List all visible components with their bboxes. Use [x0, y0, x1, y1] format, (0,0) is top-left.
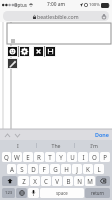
staticText: L	[97, 165, 101, 173]
button[interactable]: Dictate	[28, 188, 39, 198]
button[interactable]: X	[30, 176, 40, 186]
staticText: U	[70, 153, 75, 161]
button[interactable]: Share	[101, 13, 107, 19]
button[interactable]: G	[50, 164, 60, 174]
button[interactable]: Done	[95, 131, 109, 138]
button[interactable]: Change keyboard	[16, 188, 27, 198]
button[interactable]: K	[83, 164, 93, 174]
staticText: K	[86, 165, 90, 173]
button[interactable]: V	[52, 176, 62, 186]
button[interactable]: M	[85, 176, 95, 186]
staticText: Optus	[14, 2, 28, 8]
button[interactable]: F	[39, 164, 49, 174]
button[interactable]: Smiley	[8, 47, 17, 56]
staticText: E	[26, 153, 30, 161]
staticText: S	[20, 165, 24, 173]
staticText: 123	[5, 190, 13, 196]
staticText: Q	[4, 153, 9, 161]
button[interactable]: L	[94, 164, 104, 174]
staticText: W	[14, 153, 20, 161]
button[interactable]: Backspace	[96, 176, 110, 186]
staticText: P	[103, 153, 107, 161]
button[interactable]: Next field	[13, 131, 21, 139]
staticText: B	[66, 177, 71, 185]
staticText: beatlesbible.com	[37, 13, 79, 20]
button[interactable]	[7, 23, 111, 44]
staticText: N	[77, 177, 82, 185]
button[interactable]: Y	[56, 152, 66, 162]
button[interactable]: return	[85, 188, 110, 198]
button[interactable]: Gear	[20, 47, 29, 56]
staticText: Z	[22, 177, 26, 185]
staticText: G	[53, 165, 58, 173]
staticText: space	[56, 190, 68, 196]
staticText: The	[51, 142, 61, 149]
button[interactable]: R	[34, 152, 44, 162]
button[interactable]: C	[41, 176, 51, 186]
staticText: O	[92, 153, 97, 161]
staticText: V	[55, 177, 59, 185]
button[interactable]: O	[89, 152, 99, 162]
staticText: I	[82, 153, 85, 161]
button[interactable]: 123	[2, 188, 15, 198]
button[interactable]: Save	[46, 47, 55, 56]
staticText: 100%	[89, 2, 100, 8]
button[interactable]: E	[23, 152, 33, 162]
button[interactable]: B	[63, 176, 73, 186]
button[interactable]: T	[45, 152, 55, 162]
button[interactable]: Q	[2, 152, 11, 162]
button[interactable]: P	[100, 152, 110, 162]
staticText: C	[44, 177, 48, 185]
button[interactable]: The	[37, 140, 74, 150]
button[interactable]: I	[78, 152, 88, 162]
staticText: I	[17, 142, 19, 149]
button[interactable]: U	[67, 152, 77, 162]
button[interactable]: I'm	[75, 140, 112, 150]
staticText: A	[10, 165, 14, 173]
button[interactable]: S	[17, 164, 27, 174]
staticText: J	[76, 165, 78, 173]
staticText: D	[31, 165, 36, 173]
button[interactable]: N	[74, 176, 84, 186]
staticText: F	[42, 165, 46, 173]
button[interactable]: I	[0, 140, 36, 150]
button[interactable]: A	[7, 164, 16, 174]
button[interactable]: Close	[34, 47, 43, 56]
staticText: Y	[59, 153, 63, 161]
staticText: H	[64, 165, 69, 173]
staticText: 7:00 am	[47, 1, 66, 8]
staticText: return	[91, 190, 105, 196]
button[interactable]: Edit	[8, 59, 17, 68]
button[interactable]: H	[61, 164, 71, 174]
button[interactable]: D	[28, 164, 38, 174]
button[interactable]: Previous field	[3, 131, 11, 139]
button[interactable]: Shift	[2, 176, 17, 186]
staticText: X	[33, 177, 37, 185]
staticText: M	[87, 177, 93, 185]
button[interactable]: J	[72, 164, 82, 174]
staticText: Done	[95, 131, 109, 138]
staticText: R	[37, 153, 41, 161]
button[interactable]: Z	[18, 176, 29, 186]
staticText: I'm	[90, 142, 98, 149]
button[interactable]: W	[12, 152, 22, 162]
staticText: T	[48, 153, 52, 161]
button[interactable]: space	[40, 188, 84, 198]
button[interactable]: beatlesbible.com	[3, 11, 109, 21]
